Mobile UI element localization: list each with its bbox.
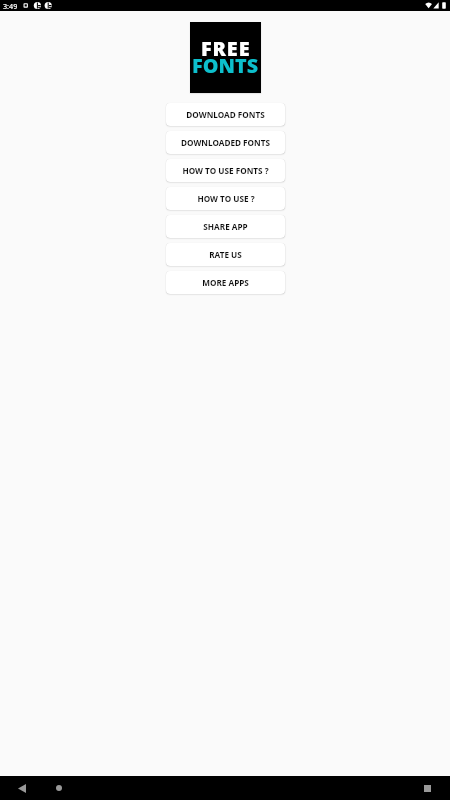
staticText: HOW TO USE ?	[197, 193, 255, 204]
staticText: SHARE APP	[203, 221, 248, 232]
button[interactable]: DOWNLOADED FONTS	[166, 131, 285, 154]
button[interactable]: Home	[47, 776, 71, 800]
staticText: RATE US	[209, 249, 242, 260]
button[interactable]: Recents	[415, 776, 439, 800]
staticText: HOW TO USE FONTS ?	[182, 165, 269, 176]
staticText: FREE	[201, 35, 251, 62]
staticText: DOWNLOADED FONTS	[181, 137, 270, 148]
staticText: MORE APPS	[202, 277, 249, 288]
button[interactable]: SHARE APP	[166, 215, 285, 238]
staticText: 3:49	[3, 1, 18, 11]
staticText: DOWNLOAD FONTS	[186, 109, 265, 120]
button[interactable]: MORE APPS	[166, 271, 285, 294]
button[interactable]: Back	[10, 776, 34, 800]
button[interactable]: HOW TO USE ?	[166, 187, 285, 210]
staticText: FONTS	[192, 52, 259, 79]
button[interactable]: HOW TO USE FONTS ?	[166, 159, 285, 182]
button[interactable]: DOWNLOAD FONTS	[166, 103, 285, 126]
button[interactable]: RATE US	[166, 243, 285, 266]
